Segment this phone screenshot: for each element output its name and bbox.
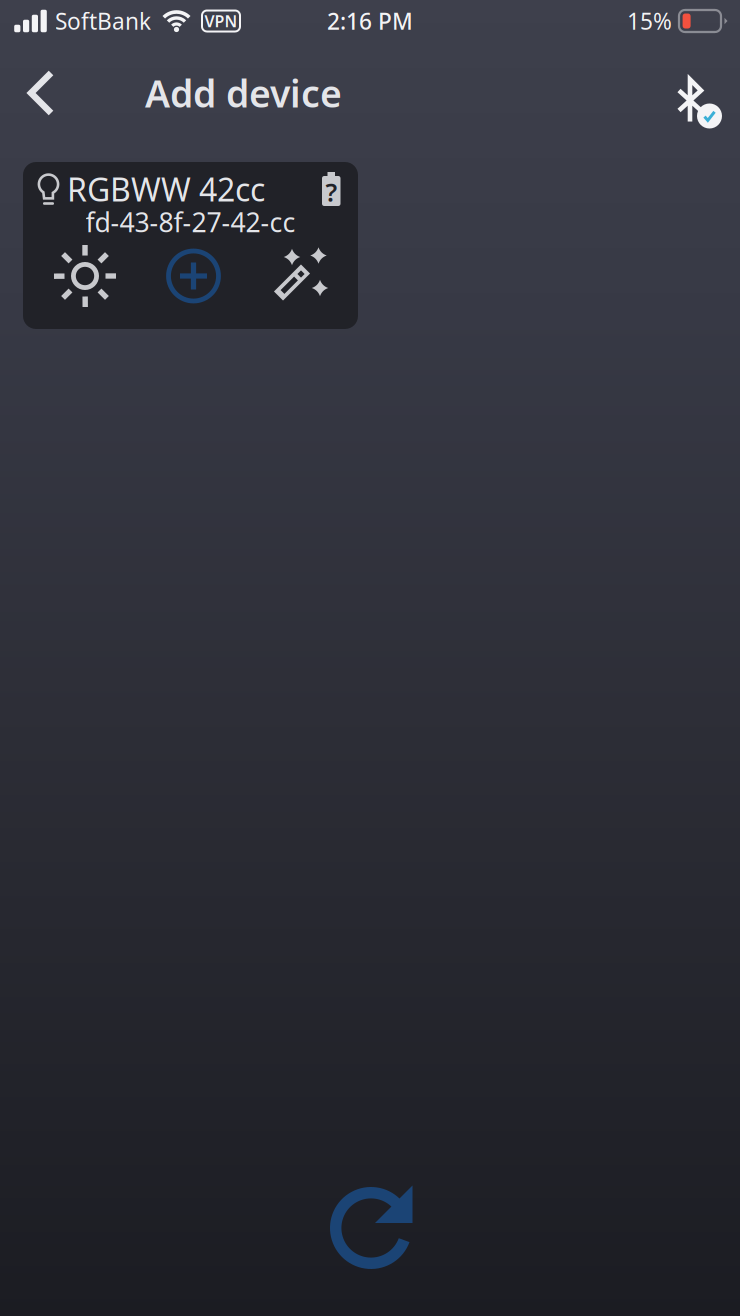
staticText: RGBWW 42cc	[67, 168, 265, 210]
staticText: fd-43-8f-27-42-cc	[85, 204, 295, 240]
button[interactable]: Refresh	[307, 1170, 439, 1286]
staticText: VPN	[204, 10, 237, 32]
button[interactable]: Brightness	[50, 246, 120, 306]
button[interactable]: Add device	[163, 246, 223, 306]
button[interactable]: Effects	[267, 246, 331, 306]
button[interactable]: Bluetooth connected	[658, 44, 740, 141]
button[interactable]: Back	[0, 52, 73, 134]
staticText: SoftBank	[55, 6, 151, 36]
staticText: 15%	[627, 6, 672, 36]
staticText: 2:16 PM	[327, 6, 413, 36]
staticText: ?	[325, 175, 337, 209]
staticText: Add device	[145, 68, 342, 118]
